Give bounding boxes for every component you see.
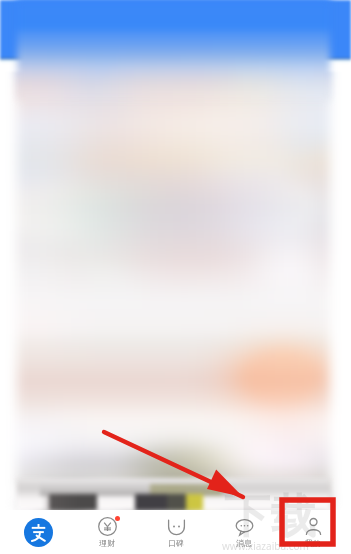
staticText: 下载 — [224, 488, 316, 546]
button[interactable]: 首页 — [7, 510, 69, 554]
button[interactable]: 口碑 — [145, 510, 207, 554]
button[interactable]: 消息 — [213, 510, 275, 554]
button[interactable]: 理财 — [76, 510, 138, 554]
button[interactable]: 我的 — [282, 510, 344, 554]
staticText: 消息 — [236, 538, 252, 548]
staticText: 理财 — [99, 538, 115, 548]
staticText: www.xiazaiba.com — [222, 539, 309, 553]
staticText: 口碑 — [168, 538, 184, 548]
staticText: 我的 — [305, 538, 321, 548]
